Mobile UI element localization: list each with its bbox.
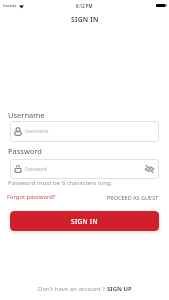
staticText: Password <box>8 146 42 156</box>
staticText: Forgot password? <box>7 193 56 201</box>
button[interactable]: Forgot password? <box>7 193 56 201</box>
staticText: Carrier <box>3 3 17 9</box>
staticText: SIGN UP <box>107 285 132 293</box>
staticText: SIGN IN <box>71 217 98 226</box>
staticText: PROCEED AS GUEST <box>107 194 159 201</box>
staticText: Password <box>25 166 145 173</box>
staticText: SIGN IN <box>71 15 99 24</box>
staticText: Username <box>8 110 45 120</box>
button[interactable]: Username <box>10 121 159 142</box>
staticText: Don't have an account ? <box>38 285 107 293</box>
staticText: Password must be 6 characters long. <box>8 179 113 187</box>
button[interactable]: Password <box>10 159 159 179</box>
staticText: Username <box>25 128 154 135</box>
staticText: 6:12 PM <box>76 3 93 9</box>
button[interactable]: PROCEED AS GUEST <box>107 194 159 201</box>
button[interactable]: Toggle password visibility <box>145 165 154 173</box>
button[interactable]: SIGN IN <box>10 211 159 231</box>
button[interactable]: SIGN UP <box>107 285 132 293</box>
